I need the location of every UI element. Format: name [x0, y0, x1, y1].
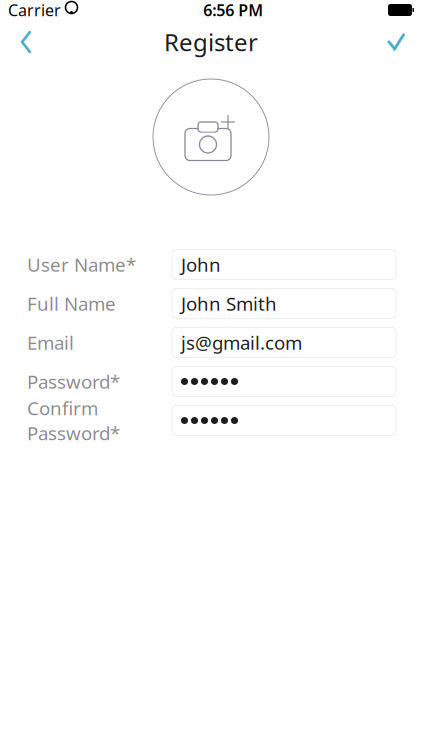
staticText: User Name*: [27, 252, 136, 277]
button[interactable]: js@gmail.com: [172, 327, 396, 357]
button[interactable]: Back: [4, 20, 48, 64]
staticText: Register: [164, 26, 258, 58]
staticText: John Smith: [181, 291, 277, 316]
button[interactable]: Add profile photo: [153, 79, 269, 195]
staticText: Email: [27, 330, 74, 355]
staticText: Password*: [27, 369, 120, 394]
button[interactable]: [172, 405, 396, 435]
button[interactable]: John: [172, 249, 396, 279]
staticText: Carrier: [8, 0, 61, 21]
staticText: Full Name: [27, 291, 116, 316]
staticText: John: [181, 252, 221, 277]
staticText: 6:56 PM: [203, 0, 263, 21]
button[interactable]: [172, 366, 396, 396]
button[interactable]: John Smith: [172, 288, 396, 318]
button[interactable]: Done: [374, 20, 418, 64]
staticText: js@gmail.com: [181, 330, 302, 355]
staticText: Confirm Password*: [27, 396, 120, 445]
